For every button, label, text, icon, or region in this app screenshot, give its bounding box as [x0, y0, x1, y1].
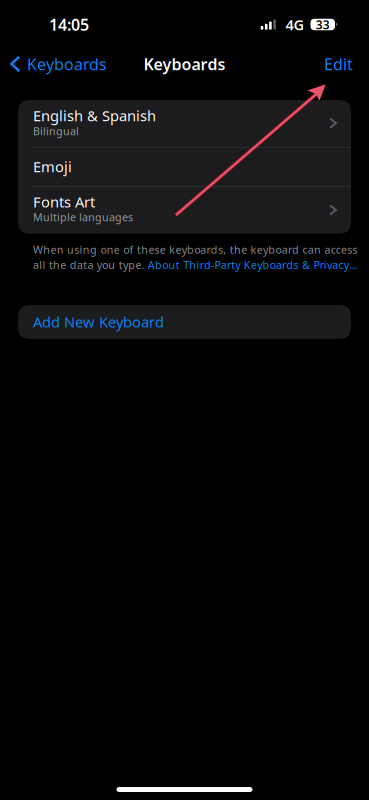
staticText: About Third-Party Keyboards & Privacy… — [148, 258, 357, 272]
staticText: Bilingual — [33, 124, 79, 138]
staticText: Multiple languages — [33, 210, 133, 224]
staticText: 33 — [316, 16, 330, 32]
button[interactable]: About Third-Party Keyboards & Privacy… — [148, 258, 357, 272]
button[interactable]: Add New Keyboard — [18, 305, 351, 339]
staticText: Keyboards — [27, 53, 107, 75]
staticText: 4G — [285, 15, 304, 34]
staticText: Emoji — [33, 157, 72, 176]
staticText: When using one of these keyboards, the k… — [33, 243, 357, 257]
staticText: 14:05 — [49, 14, 89, 35]
staticText: Add New Keyboard — [33, 312, 164, 332]
staticText: English & Spanish — [33, 106, 156, 125]
button[interactable]: Emoji — [18, 148, 351, 186]
button[interactable]: English & Spanish — [18, 100, 351, 147]
staticText: Fonts Art — [33, 192, 95, 211]
staticText: Keyboards — [143, 53, 225, 75]
button[interactable]: Fonts Art — [18, 187, 351, 234]
staticText: all the data you type. — [33, 258, 148, 272]
button[interactable]: Keyboards — [0, 48, 107, 80]
button[interactable]: Edit — [324, 48, 369, 80]
staticText: Edit — [324, 53, 353, 75]
